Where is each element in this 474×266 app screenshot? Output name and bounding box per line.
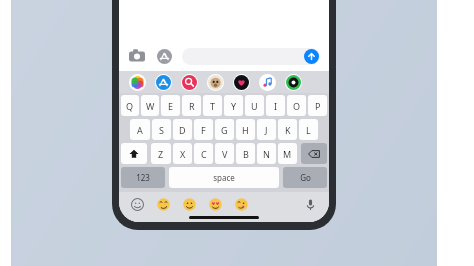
button[interactable]: space xyxy=(169,167,279,188)
staticText: G xyxy=(221,124,228,136)
staticText: T xyxy=(210,100,216,112)
staticText: L xyxy=(306,124,311,136)
button[interactable]: U xyxy=(245,95,264,116)
button[interactable]: I xyxy=(266,95,285,116)
button[interactable]: Emoji keyboard xyxy=(131,198,144,211)
button[interactable]: F xyxy=(194,119,213,140)
staticText: B xyxy=(243,148,249,160)
button[interactable]: C xyxy=(194,143,213,164)
staticText: P xyxy=(315,100,321,112)
staticText: U xyxy=(251,100,258,112)
button[interactable]: H xyxy=(236,119,255,140)
button[interactable]: App xyxy=(129,74,146,91)
button[interactable]: Emoji xyxy=(157,198,170,211)
staticText: M xyxy=(283,148,292,160)
button[interactable]: Emoji xyxy=(183,198,196,211)
button[interactable]: Shift xyxy=(121,143,147,164)
staticText: 123 xyxy=(136,172,150,183)
staticText: W xyxy=(146,100,155,112)
button[interactable]: L xyxy=(299,119,318,140)
staticText: C xyxy=(201,148,207,160)
button[interactable]: Send xyxy=(182,48,320,65)
button[interactable]: Camera xyxy=(128,47,146,65)
staticText: Q xyxy=(126,100,134,112)
button[interactable]: W xyxy=(141,95,159,116)
button[interactable]: 123 xyxy=(121,167,165,188)
button[interactable]: A xyxy=(130,119,150,140)
staticText: K xyxy=(285,124,291,136)
button[interactable]: App xyxy=(181,74,198,91)
button[interactable]: Emoji xyxy=(209,198,222,211)
button[interactable]: Emoji xyxy=(235,198,248,211)
button[interactable]: Y xyxy=(224,95,243,116)
staticText: Z xyxy=(158,148,164,160)
button[interactable]: D xyxy=(173,119,192,140)
button[interactable]: R xyxy=(182,95,201,116)
button[interactable]: O xyxy=(287,95,306,116)
staticText: N xyxy=(263,148,270,160)
button[interactable]: App xyxy=(285,74,302,91)
staticText: F xyxy=(201,124,206,136)
button[interactable]: Go xyxy=(283,167,327,188)
button[interactable]: X xyxy=(173,143,192,164)
button[interactable]: App xyxy=(155,74,172,91)
button[interactable]: P xyxy=(308,95,327,116)
staticText: J xyxy=(265,124,268,136)
button[interactable]: K xyxy=(278,119,297,140)
button[interactable]: App Store xyxy=(155,47,173,65)
staticText: O xyxy=(293,100,301,112)
button[interactable]: App xyxy=(259,74,276,91)
button[interactable]: Z xyxy=(151,143,171,164)
button[interactable]: App xyxy=(233,74,250,91)
button[interactable]: T xyxy=(203,95,222,116)
staticText: space xyxy=(213,172,235,183)
staticText: V xyxy=(222,148,228,160)
staticText: S xyxy=(159,124,164,136)
button[interactable]: N xyxy=(257,143,276,164)
button[interactable]: Send xyxy=(304,49,319,64)
staticText: I xyxy=(274,100,278,112)
staticText: D xyxy=(179,124,186,136)
button[interactable]: B xyxy=(236,143,255,164)
staticText: H xyxy=(242,124,249,136)
button[interactable]: Q xyxy=(121,95,139,116)
button[interactable]: Dictate xyxy=(304,198,317,211)
button[interactable]: E xyxy=(161,95,180,116)
button[interactable]: J xyxy=(257,119,276,140)
staticText: A xyxy=(137,124,143,136)
staticText: R xyxy=(189,100,195,112)
staticText: Y xyxy=(231,100,237,112)
button[interactable]: G xyxy=(215,119,234,140)
button[interactable]: S xyxy=(152,119,171,140)
button[interactable]: Backspace xyxy=(301,143,327,164)
button[interactable]: App xyxy=(207,74,224,91)
staticText: E xyxy=(168,100,174,112)
staticText: X xyxy=(180,148,186,160)
staticText: Go xyxy=(300,172,311,183)
button[interactable]: V xyxy=(215,143,234,164)
button[interactable]: M xyxy=(278,143,297,164)
